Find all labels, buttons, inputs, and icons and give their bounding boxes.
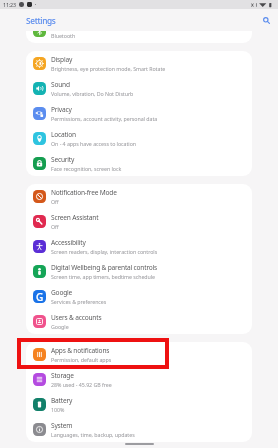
staticText: Privacy [51,105,72,114]
staticText: Services & preferences [51,298,107,305]
button[interactable]: Location [26,126,252,151]
button[interactable]: Display [26,51,252,76]
staticText: Screen readers, display, interaction con… [51,248,158,255]
staticText: Settings [26,15,56,26]
staticText: Notification-free Mode [51,188,117,197]
staticText: Security [51,155,75,164]
staticText: Location [51,130,76,139]
button[interactable]: G [26,284,252,309]
staticText: Languages, time, backup, updates [51,431,135,438]
button[interactable]: Users & accounts [26,309,252,334]
staticText: Users & accounts [51,313,102,322]
button[interactable]: Digital Wellbeing & parental controls [26,259,252,284]
button[interactable]: Notification-free Mode [26,184,252,209]
button[interactable]: Privacy [26,101,252,126]
staticText: Face recognition, screen lock [51,165,122,172]
staticText: Display [51,55,73,64]
button[interactable]: Security [26,151,252,176]
staticText: Permission, default apps [51,356,112,363]
staticText: Battery [51,396,73,405]
staticText: Off [51,223,59,230]
button[interactable]: Apps & notifications [26,342,252,367]
staticText: 11:23 [3,1,16,8]
button[interactable]: Screen Assistant [26,209,252,234]
staticText: Screen Assistant [51,213,99,222]
staticText: Apps & notifications [51,346,110,355]
staticText: G [36,290,44,303]
staticText: Accessibility [51,238,86,247]
staticText: Off [51,198,59,205]
staticText: Bluetooth [51,32,76,39]
button[interactable]: Search [259,13,273,27]
staticText: Brightness, eye protection mode, Smart R… [51,65,166,72]
staticText: Storage [51,371,74,380]
button[interactable]: Sound [26,76,252,101]
staticText: Volume, vibration, Do Not Disturb [51,90,134,97]
staticText: Google [51,288,73,297]
staticText: Google [51,323,69,330]
staticText: Sound [51,80,70,89]
button[interactable]: Storage [26,367,252,392]
button[interactable]: System [26,417,252,442]
staticText: Permissions, account activity, personal … [51,115,158,122]
staticText: System [51,421,73,430]
staticText: 100% [51,406,65,413]
staticText: On - 4 apps have access to location [51,140,137,147]
button[interactable]: Accessibility [26,234,252,259]
staticText: Digital Wellbeing & parental controls [51,263,158,272]
button[interactable]: Battery [26,392,252,417]
staticText: Screen time, app timers, bedtime schedul… [51,273,156,280]
staticText: 28% used - 45.92 GB free [51,381,112,388]
